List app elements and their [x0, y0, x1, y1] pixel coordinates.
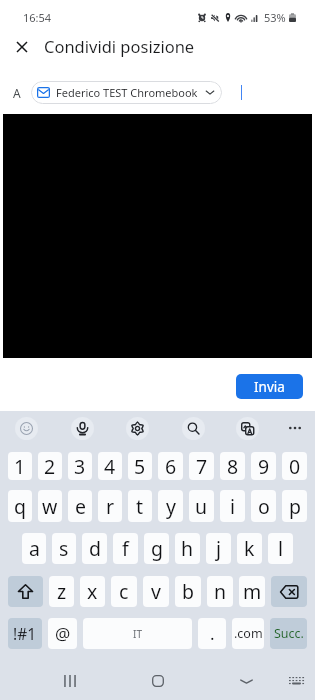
button[interactable]: t — [128, 490, 152, 522]
staticText: j — [216, 535, 222, 562]
staticText: 4 — [104, 453, 116, 480]
button[interactable]: Home — [142, 665, 174, 697]
button[interactable]: d — [82, 533, 107, 564]
staticText: g — [151, 535, 163, 562]
staticText: w — [42, 493, 58, 520]
staticText: 6 — [165, 453, 177, 480]
staticText: Invia — [254, 378, 285, 396]
button[interactable]: r — [98, 490, 122, 522]
staticText: y — [166, 493, 176, 520]
staticText: l — [278, 535, 284, 562]
staticText: t — [136, 493, 144, 520]
staticText: Succ. — [274, 625, 304, 642]
button[interactable]: . — [198, 618, 226, 649]
staticText: !#1 — [13, 623, 37, 644]
staticText: r — [106, 493, 115, 520]
button[interactable]: b — [175, 576, 201, 607]
staticText: a — [29, 535, 40, 562]
staticText: m — [243, 578, 262, 605]
button[interactable]: 7 — [189, 452, 214, 480]
button[interactable]: o — [251, 490, 276, 522]
staticText: f — [122, 535, 129, 562]
staticText: q — [14, 493, 26, 520]
button[interactable]: Cambia tastiera — [280, 665, 312, 697]
button[interactable]: 4 — [98, 452, 122, 480]
button[interactable]: m — [239, 576, 265, 607]
staticText: Federico TEST Chromebook — [56, 85, 198, 100]
staticText: @ — [55, 622, 71, 645]
button[interactable]: a — [22, 533, 46, 564]
button[interactable]: Federico TEST Chromebook — [31, 81, 222, 104]
button[interactable]: g — [144, 533, 169, 564]
button[interactable]: w — [38, 490, 62, 522]
button[interactable]: l — [268, 533, 293, 564]
staticText: 7 — [196, 453, 208, 480]
button[interactable]: 0 — [282, 452, 307, 480]
staticText: i — [230, 493, 236, 520]
button[interactable]: k — [237, 533, 262, 564]
button[interactable]: q — [8, 490, 32, 522]
button[interactable]: 3 — [68, 452, 92, 480]
staticText: d — [89, 535, 101, 562]
button[interactable]: y — [158, 490, 183, 522]
button[interactable]: x — [80, 576, 105, 607]
button[interactable]: 8 — [220, 452, 245, 480]
button[interactable]: Input vocale — [71, 417, 94, 440]
staticText: 5 — [134, 453, 146, 480]
button[interactable]: Maiuscole — [8, 576, 43, 607]
button[interactable]: Succ. — [270, 618, 307, 649]
button[interactable]: u — [189, 490, 214, 522]
button[interactable]: z — [49, 576, 74, 607]
staticText: 53% — [264, 10, 286, 25]
button[interactable]: Nascondi tastiera — [230, 665, 262, 697]
button[interactable]: 9 — [251, 452, 276, 480]
staticText: 9 — [258, 453, 270, 480]
button[interactable]: .com — [232, 618, 264, 649]
button[interactable]: 2 — [38, 452, 62, 480]
button[interactable]: 1 — [8, 452, 32, 480]
button[interactable]: Cancella — [271, 576, 307, 607]
staticText: 0 — [289, 453, 301, 480]
button[interactable]: n — [207, 576, 233, 607]
staticText: x — [87, 578, 98, 605]
staticText: A — [13, 85, 21, 101]
staticText: e — [75, 493, 86, 520]
button[interactable]: Recenti — [54, 665, 86, 697]
staticText: o — [258, 493, 270, 520]
staticText: 8 — [227, 453, 239, 480]
staticText: b — [182, 578, 194, 605]
button[interactable]: Invia — [236, 374, 303, 399]
button[interactable]: @ — [48, 618, 77, 649]
button[interactable]: IT — [83, 618, 192, 649]
staticText: k — [244, 535, 255, 562]
button[interactable]: c — [111, 576, 137, 607]
staticText: 3 — [74, 453, 86, 480]
button[interactable]: Chiudi — [3, 28, 41, 66]
staticText: p — [289, 493, 301, 520]
button[interactable]: Emoji — [15, 417, 38, 440]
button[interactable]: i — [220, 490, 245, 522]
staticText: 1 — [14, 453, 26, 480]
button[interactable]: h — [175, 533, 200, 564]
button[interactable]: 6 — [158, 452, 183, 480]
button[interactable]: Impostazioni — [126, 417, 149, 440]
staticText: 16:54 — [23, 10, 52, 25]
button[interactable]: Altro — [283, 416, 307, 440]
button[interactable]: v — [143, 576, 169, 607]
staticText: . — [210, 622, 215, 645]
button[interactable]: e — [68, 490, 92, 522]
button[interactable]: Traduci — [236, 417, 259, 440]
button[interactable]: 5 — [128, 452, 152, 480]
staticText: h — [181, 535, 194, 562]
button[interactable]: Cerca — [182, 417, 205, 440]
button[interactable]: p — [282, 490, 307, 522]
staticText: IT — [133, 627, 142, 641]
button[interactable]: s — [52, 533, 76, 564]
button[interactable]: !#1 — [8, 618, 42, 649]
staticText: s — [59, 535, 69, 562]
staticText: z — [57, 578, 67, 605]
button[interactable]: j — [206, 533, 231, 564]
staticText: v — [151, 578, 161, 605]
staticText: n — [214, 578, 227, 605]
button[interactable]: f — [113, 533, 138, 564]
